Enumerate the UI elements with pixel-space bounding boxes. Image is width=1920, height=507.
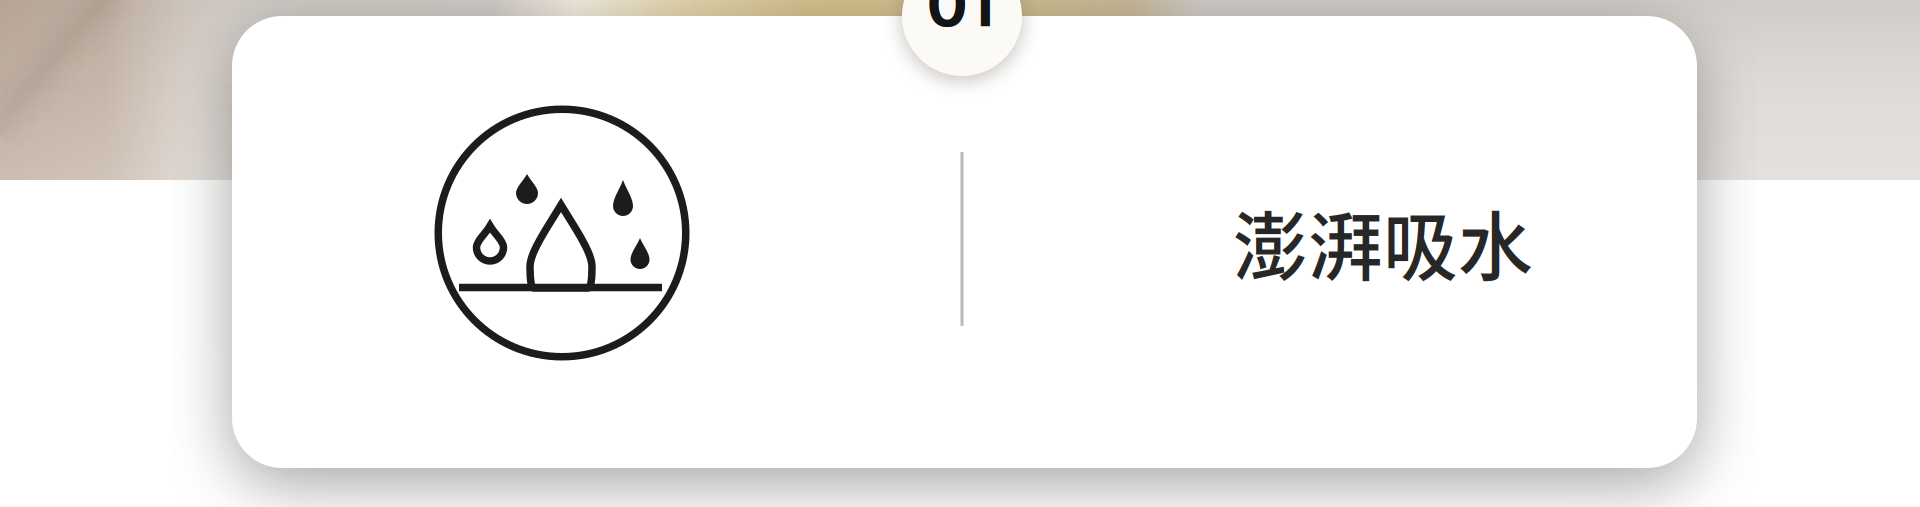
staticText: 澎湃吸水: [1233, 188, 1533, 296]
button[interactable]: 澎湃吸水: [0, 0, 1920, 507]
staticText: 01: [926, 0, 993, 41]
